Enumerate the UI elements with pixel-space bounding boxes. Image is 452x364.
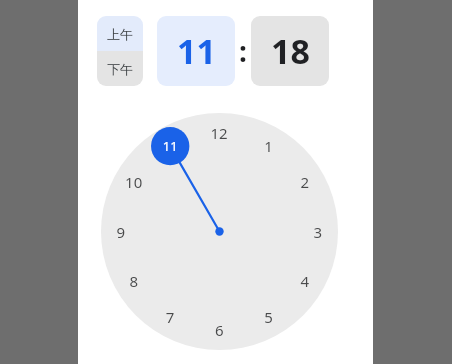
staticText: 下午 [107,61,133,77]
button[interactable]: 11 [157,16,235,86]
button[interactable]: Clock face, hour 11 selected [101,113,338,350]
staticText: : [239,32,247,70]
staticText: 11 [177,28,216,74]
button[interactable]: 下午 [97,51,143,86]
staticText: 18 [271,28,310,74]
staticText: 上午 [107,26,133,42]
button[interactable]: 上午 [97,16,143,51]
button[interactable]: 18 [251,16,329,86]
